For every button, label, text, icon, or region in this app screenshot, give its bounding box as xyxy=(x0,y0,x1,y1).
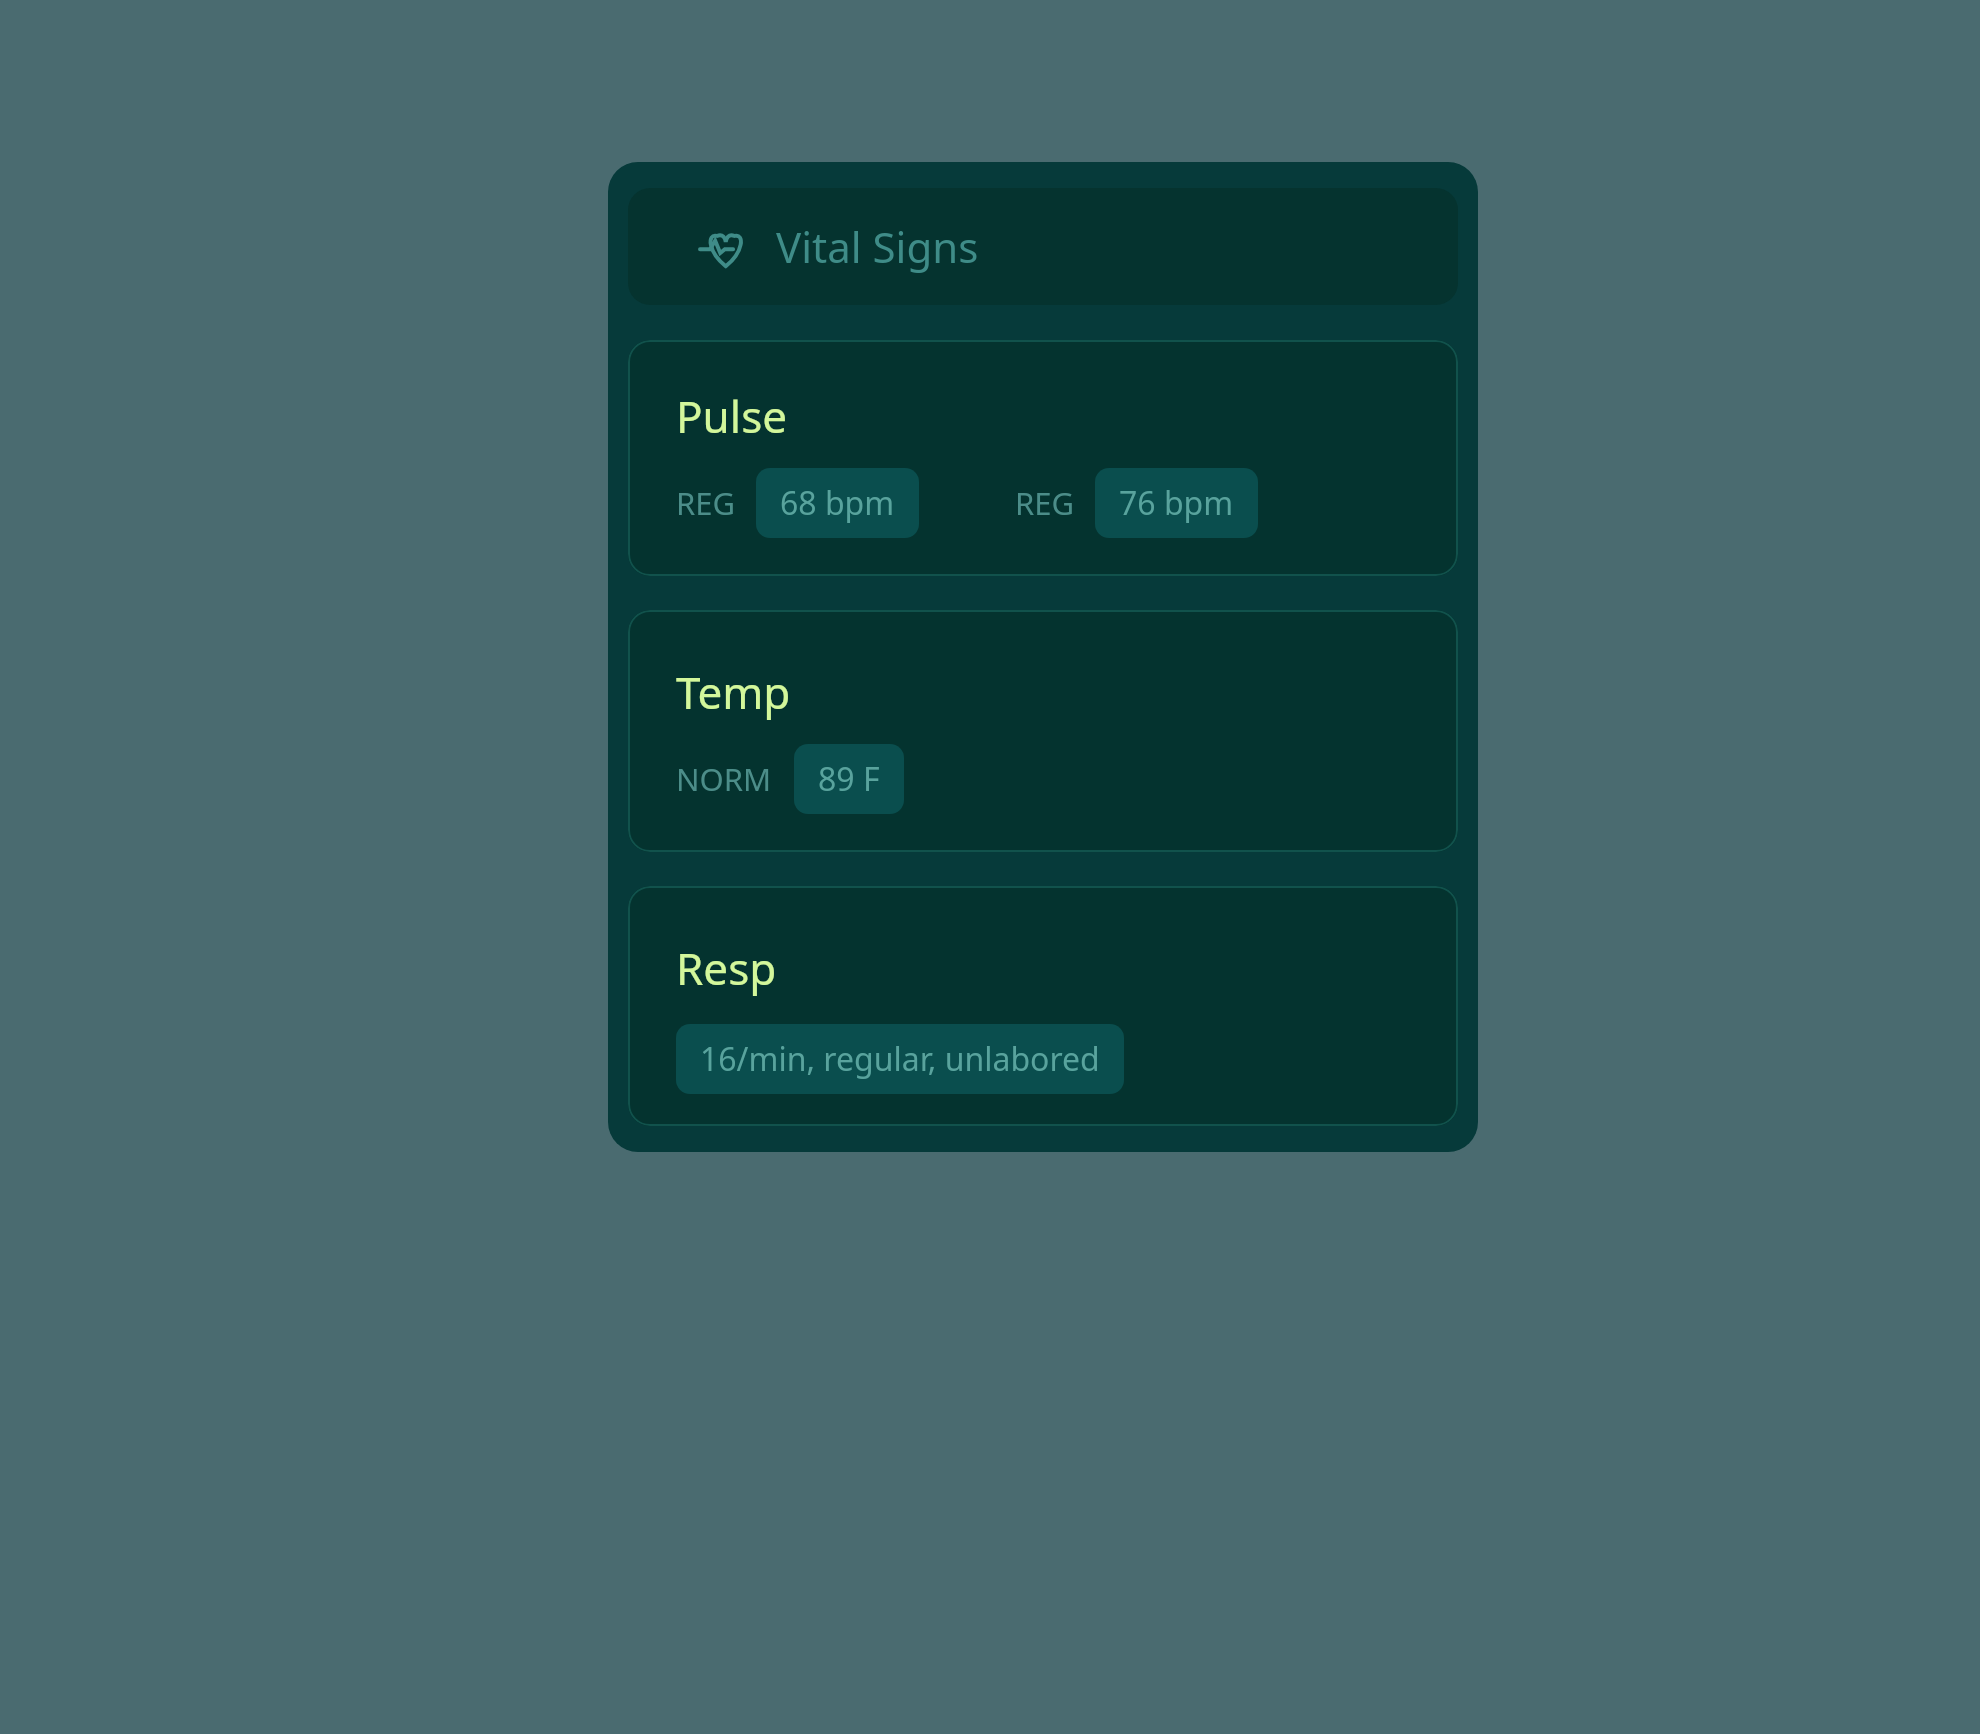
button[interactable]: 16/min, regular, unlabored xyxy=(676,1024,1124,1094)
button[interactable]: 68 bpm xyxy=(756,468,919,538)
staticText: 68 bpm xyxy=(780,481,895,525)
staticText: NORM xyxy=(676,758,772,800)
staticText: Temp xyxy=(676,662,791,722)
button[interactable]: Resp xyxy=(628,886,1458,1126)
button[interactable]: Temp xyxy=(628,610,1458,852)
staticText: Pulse xyxy=(676,386,788,446)
staticText: Resp xyxy=(676,938,777,998)
button[interactable]: 89 F xyxy=(794,744,904,814)
staticText: 16/min, regular, unlabored xyxy=(700,1037,1100,1081)
staticText: REG xyxy=(1015,482,1075,524)
staticText: 89 F xyxy=(818,757,880,801)
button[interactable]: Vital signs xyxy=(628,188,1458,305)
staticText: Vital Signs xyxy=(776,218,979,275)
staticText: REG xyxy=(676,482,736,524)
button[interactable]: Pulse xyxy=(628,340,1458,576)
button[interactable]: 76 bpm xyxy=(1095,468,1258,538)
staticText: 76 bpm xyxy=(1119,481,1234,525)
other: Vital signs xyxy=(700,224,746,270)
